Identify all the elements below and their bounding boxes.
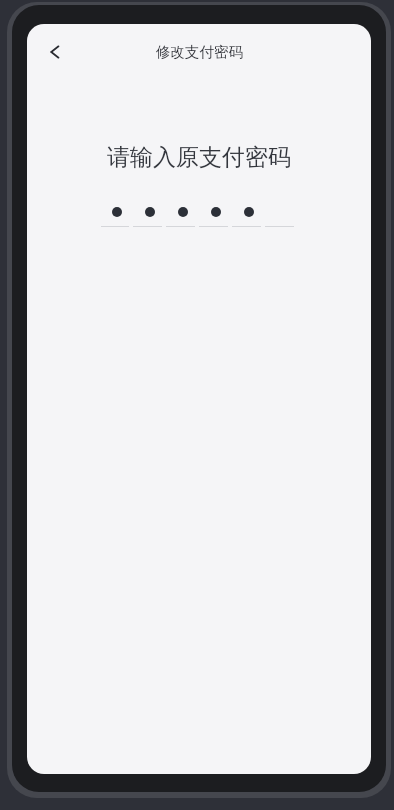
staticText: 修改支付密码: [156, 43, 243, 61]
staticText: 请输入原支付密码: [27, 143, 371, 172]
button[interactable]: Back: [33, 30, 77, 74]
button[interactable]: Payment password input: [101, 202, 298, 242]
